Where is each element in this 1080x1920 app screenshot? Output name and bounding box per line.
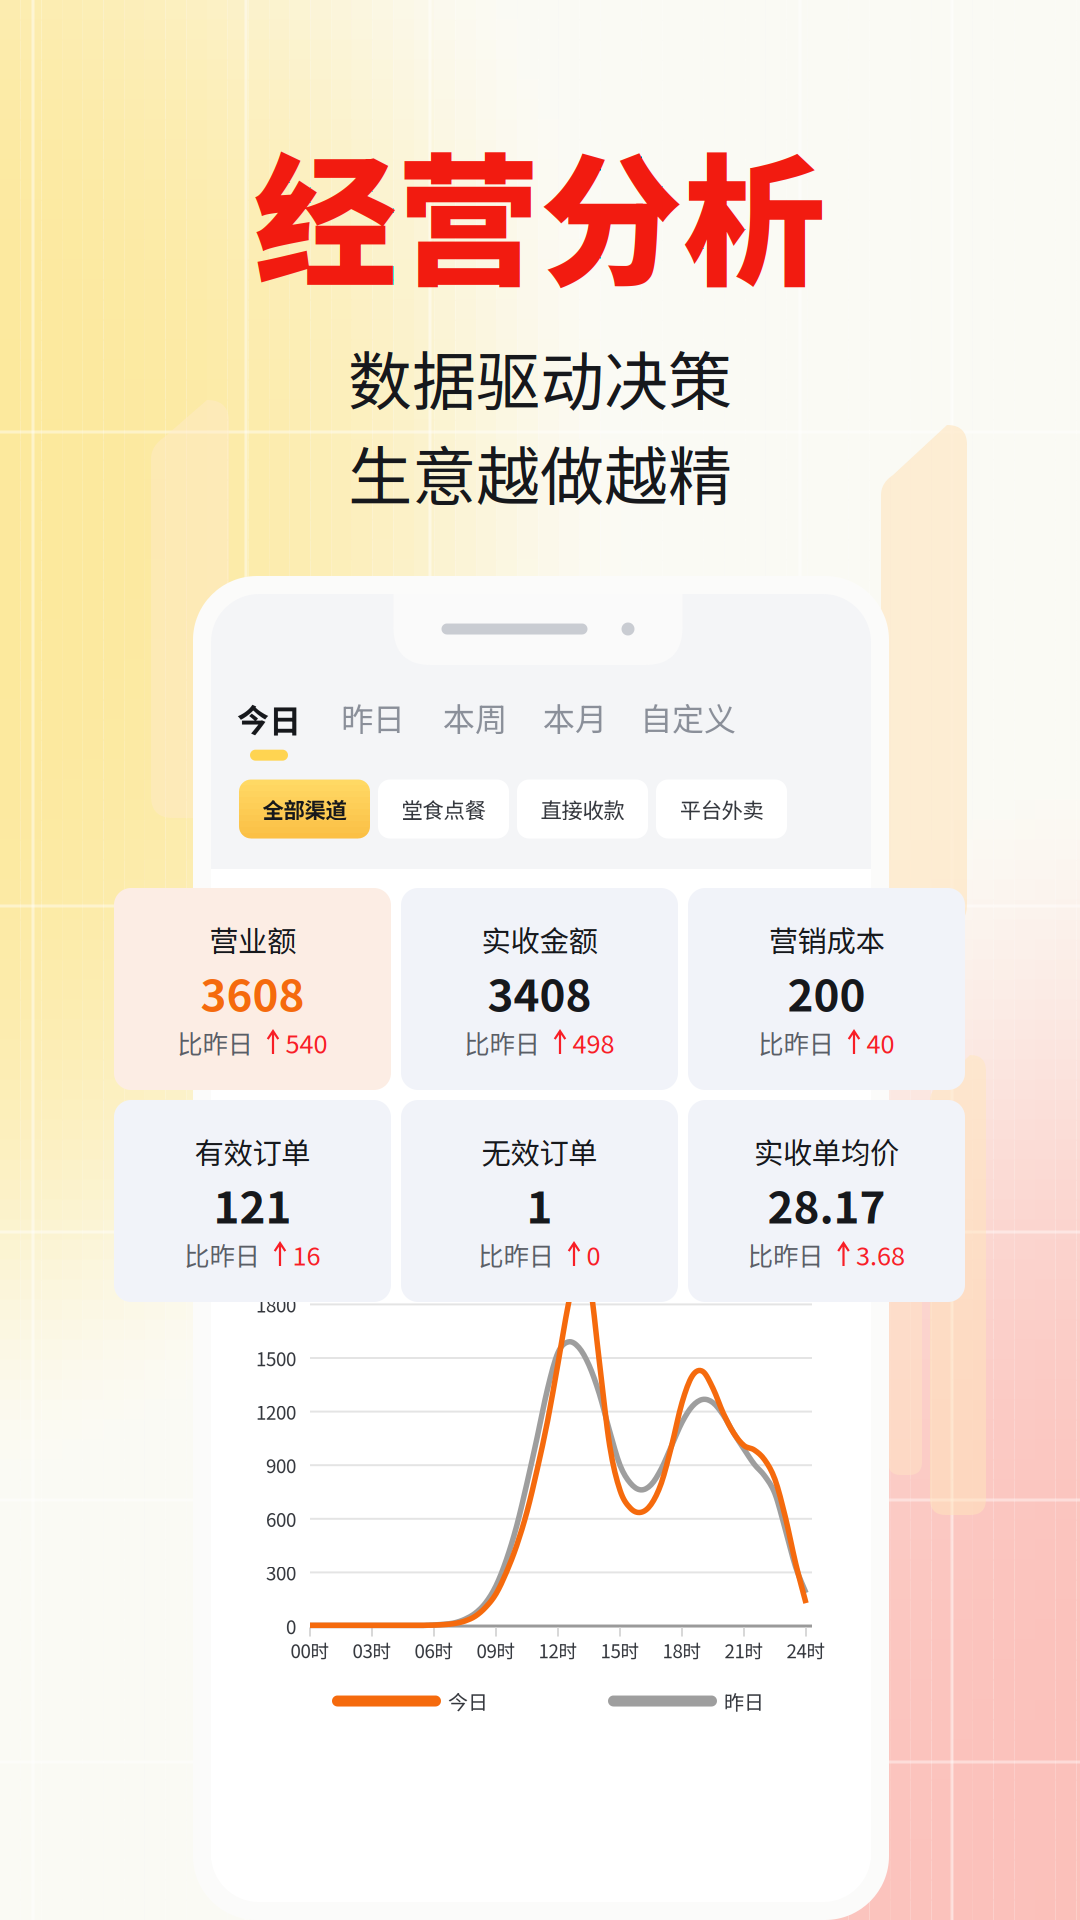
staticText: 40 xyxy=(866,1024,894,1061)
staticText: 平台外卖 xyxy=(679,794,763,824)
staticText: 全部渠道 xyxy=(262,794,346,824)
button[interactable]: 本月 xyxy=(533,678,617,756)
button[interactable]: 昨日 xyxy=(331,678,415,756)
staticText: 1 xyxy=(526,1172,552,1236)
staticText: 3608 xyxy=(200,960,304,1024)
staticText: 1200 xyxy=(256,1398,296,1425)
button[interactable]: 堂食点餐 xyxy=(378,779,509,838)
staticText: 本月 xyxy=(543,694,607,740)
staticText: 24时 xyxy=(786,1636,825,1663)
staticText: 生意越做越精 xyxy=(348,426,732,518)
staticText: 18时 xyxy=(662,1636,701,1663)
staticText: 堂食点餐 xyxy=(401,794,485,824)
staticText: 经营分析 xyxy=(254,109,826,315)
staticText: 03时 xyxy=(352,1636,391,1663)
staticText: 00时 xyxy=(290,1636,329,1663)
staticText: 自定义 xyxy=(640,694,736,740)
staticText: 比昨日 xyxy=(464,1024,539,1061)
staticText: 498 xyxy=(572,1024,614,1061)
staticText: 28.17 xyxy=(767,1172,885,1236)
staticText: 昨日 xyxy=(724,1686,764,1715)
staticText: 3408 xyxy=(487,960,591,1024)
staticText: 21时 xyxy=(724,1636,763,1663)
button[interactable]: 自定义 xyxy=(632,678,744,756)
button[interactable]: 有效订单 xyxy=(114,1100,391,1302)
staticText: 比昨日 xyxy=(478,1236,553,1273)
button[interactable]: 全部渠道 xyxy=(239,779,370,838)
staticText: 0 xyxy=(286,1612,296,1639)
staticText: 实收单均价 xyxy=(754,1130,899,1172)
staticText: 1500 xyxy=(256,1344,296,1371)
staticText: 121 xyxy=(213,1172,291,1236)
staticText: 16 xyxy=(292,1236,320,1273)
staticText: 0 xyxy=(586,1236,600,1273)
staticText: 比昨日 xyxy=(184,1236,259,1273)
staticText: 600 xyxy=(266,1505,296,1532)
button[interactable]: 直接收款 xyxy=(517,779,648,838)
staticText: 今日 xyxy=(448,1686,488,1715)
staticText: 540 xyxy=(285,1024,327,1061)
button[interactable]: 实收金额 xyxy=(401,888,678,1090)
button[interactable]: 平台外卖 xyxy=(656,779,787,838)
staticText: 1800 xyxy=(256,1291,296,1318)
staticText: 本周 xyxy=(443,694,507,740)
staticText: 200 xyxy=(787,960,865,1024)
button[interactable]: 本周 xyxy=(433,678,517,756)
staticText: 直接收款 xyxy=(540,794,624,824)
staticText: 12时 xyxy=(538,1636,577,1663)
staticText: 营销成本 xyxy=(768,918,884,960)
staticText: 比昨日 xyxy=(177,1024,252,1061)
staticText: 无效订单 xyxy=(481,1130,597,1172)
staticText: 昨日 xyxy=(341,694,405,740)
staticText: 数据驱动决策 xyxy=(348,331,732,423)
staticText: 有效订单 xyxy=(194,1130,310,1172)
staticText: 15时 xyxy=(600,1636,639,1663)
staticText: 比昨日 xyxy=(748,1236,823,1273)
button[interactable]: 今日 xyxy=(223,689,315,767)
staticText: 比昨日 xyxy=(758,1024,833,1061)
button[interactable]: 无效订单 xyxy=(401,1100,678,1302)
staticText: 900 xyxy=(266,1452,296,1479)
staticText: 3.68 xyxy=(856,1236,905,1273)
staticText: 实收金额 xyxy=(481,918,597,960)
staticText: 今日 xyxy=(237,695,301,742)
button[interactable]: 实收单均价 xyxy=(688,1100,965,1302)
button[interactable]: 营销成本 xyxy=(688,888,965,1090)
staticText: 营业额 xyxy=(209,918,296,960)
staticText: 300 xyxy=(266,1559,296,1586)
button[interactable]: 营业额 xyxy=(114,888,391,1090)
staticText: 06时 xyxy=(414,1636,453,1663)
staticText: 09时 xyxy=(476,1636,515,1663)
